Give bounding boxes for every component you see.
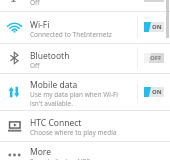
staticText: HTC Connect: [30, 117, 82, 129]
staticText: Connected to TheInternetz: [30, 30, 112, 39]
button[interactable]: Off: [144, 53, 164, 63]
staticText: ON: [152, 88, 162, 96]
button[interactable]: More: [0, 141, 170, 160]
staticText: ON: [152, 23, 162, 31]
staticText: Mobile data: [30, 79, 78, 91]
button[interactable]: Mobile data: [0, 73, 170, 110]
button[interactable]: Airplane mode: [0, 0, 170, 11]
staticText: More: [30, 146, 51, 158]
staticText: isn't available.: [30, 99, 73, 108]
staticText: Choose where to play media: [30, 128, 117, 137]
button[interactable]: Wi-Fi: [0, 11, 170, 43]
staticText: Bluetooth: [30, 50, 70, 62]
button[interactable]: HTC Connect: [0, 110, 170, 141]
button[interactable]: Bluetooth: [0, 43, 170, 73]
staticText: Wi-Fi: [30, 19, 50, 31]
staticText: Use my data plan when Wi-Fi: [30, 90, 119, 99]
staticText: Sound, display, NFC: [30, 157, 90, 160]
button[interactable]: On: [144, 87, 164, 97]
staticText: Off: [30, 0, 40, 7]
staticText: Off: [30, 61, 40, 70]
staticText: OFF: [150, 54, 162, 62]
button[interactable]: On: [144, 22, 164, 32]
